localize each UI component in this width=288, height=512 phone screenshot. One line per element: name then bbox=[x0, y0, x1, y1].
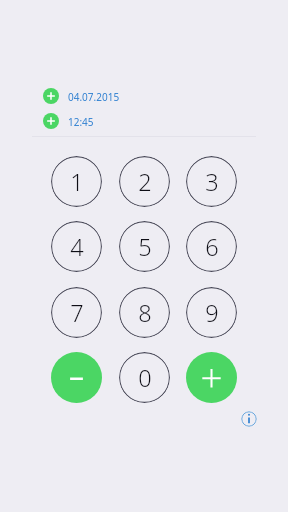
button[interactable]: Info bbox=[241, 411, 257, 427]
staticText: 2 bbox=[138, 166, 152, 198]
button[interactable]: Add bbox=[186, 352, 237, 403]
staticText: 8 bbox=[138, 297, 152, 329]
staticText: 3 bbox=[205, 166, 219, 198]
staticText: 9 bbox=[205, 297, 219, 329]
button[interactable]: 04.07.2015 bbox=[43, 88, 120, 104]
button[interactable]: 4 bbox=[51, 221, 102, 272]
button[interactable]: 7 bbox=[51, 287, 102, 338]
staticText: 1 bbox=[70, 166, 84, 198]
button[interactable]: 9 bbox=[186, 287, 237, 338]
button[interactable]: 1 bbox=[51, 156, 102, 207]
staticText: 0 bbox=[138, 362, 152, 394]
staticText: 4 bbox=[70, 231, 84, 263]
button[interactable]: 6 bbox=[186, 221, 237, 272]
button[interactable]: 5 bbox=[119, 221, 170, 272]
staticText: 7 bbox=[70, 297, 84, 329]
button[interactable]: 12:45 bbox=[43, 113, 94, 129]
button[interactable]: 8 bbox=[119, 287, 170, 338]
button[interactable]: 0 bbox=[119, 352, 170, 403]
staticText: 6 bbox=[205, 231, 219, 263]
staticText: 04.07.2015 bbox=[68, 90, 120, 104]
staticText: 5 bbox=[138, 231, 152, 263]
staticText: 12:45 bbox=[68, 115, 94, 129]
button[interactable]: Subtract bbox=[51, 352, 102, 403]
button[interactable]: 2 bbox=[119, 156, 170, 207]
button[interactable]: 3 bbox=[186, 156, 237, 207]
